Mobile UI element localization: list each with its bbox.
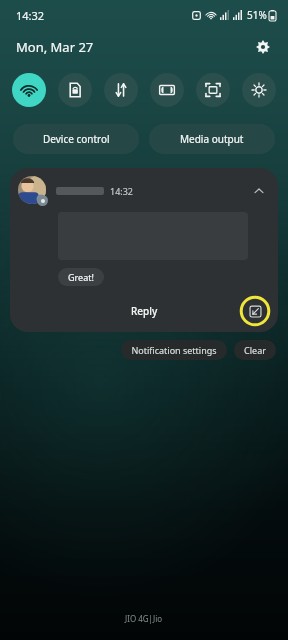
- staticText: JIO 4G|Jio: [125, 613, 163, 624]
- staticText: 14:32: [110, 185, 134, 197]
- button[interactable]: Dolby Atmos: [150, 73, 184, 107]
- staticText: Mon, Mar 27: [16, 38, 94, 56]
- button[interactable]: Reply: [117, 299, 172, 323]
- staticText: Notification settings: [131, 344, 217, 356]
- button[interactable]: Device control: [13, 124, 139, 154]
- button[interactable]: Auto brightness: [242, 73, 276, 107]
- button[interactable]: Collapse: [250, 182, 268, 200]
- button[interactable]: SIM lock: [58, 73, 92, 107]
- staticText: Device control: [43, 132, 110, 146]
- button[interactable]: 14:32: [10, 168, 278, 332]
- button[interactable]: Notification settings: [121, 340, 227, 360]
- button[interactable]: Open in pop-up view: [240, 296, 270, 326]
- button[interactable]: Settings: [252, 36, 274, 58]
- staticText: Clear: [244, 344, 266, 356]
- staticText: Reply: [131, 304, 158, 318]
- staticText: Media output: [180, 132, 244, 146]
- button[interactable]: Media output: [149, 124, 275, 154]
- button[interactable]: Wi-Fi: [12, 73, 46, 107]
- button[interactable]: Smart capture: [196, 73, 230, 107]
- staticText: 14:32: [16, 8, 45, 23]
- button[interactable]: Mobile data: [104, 73, 138, 107]
- button[interactable]: Clear: [234, 340, 276, 360]
- button[interactable]: Great!: [58, 268, 104, 286]
- staticText: 51%: [247, 8, 267, 22]
- staticText: Great!: [68, 271, 94, 283]
